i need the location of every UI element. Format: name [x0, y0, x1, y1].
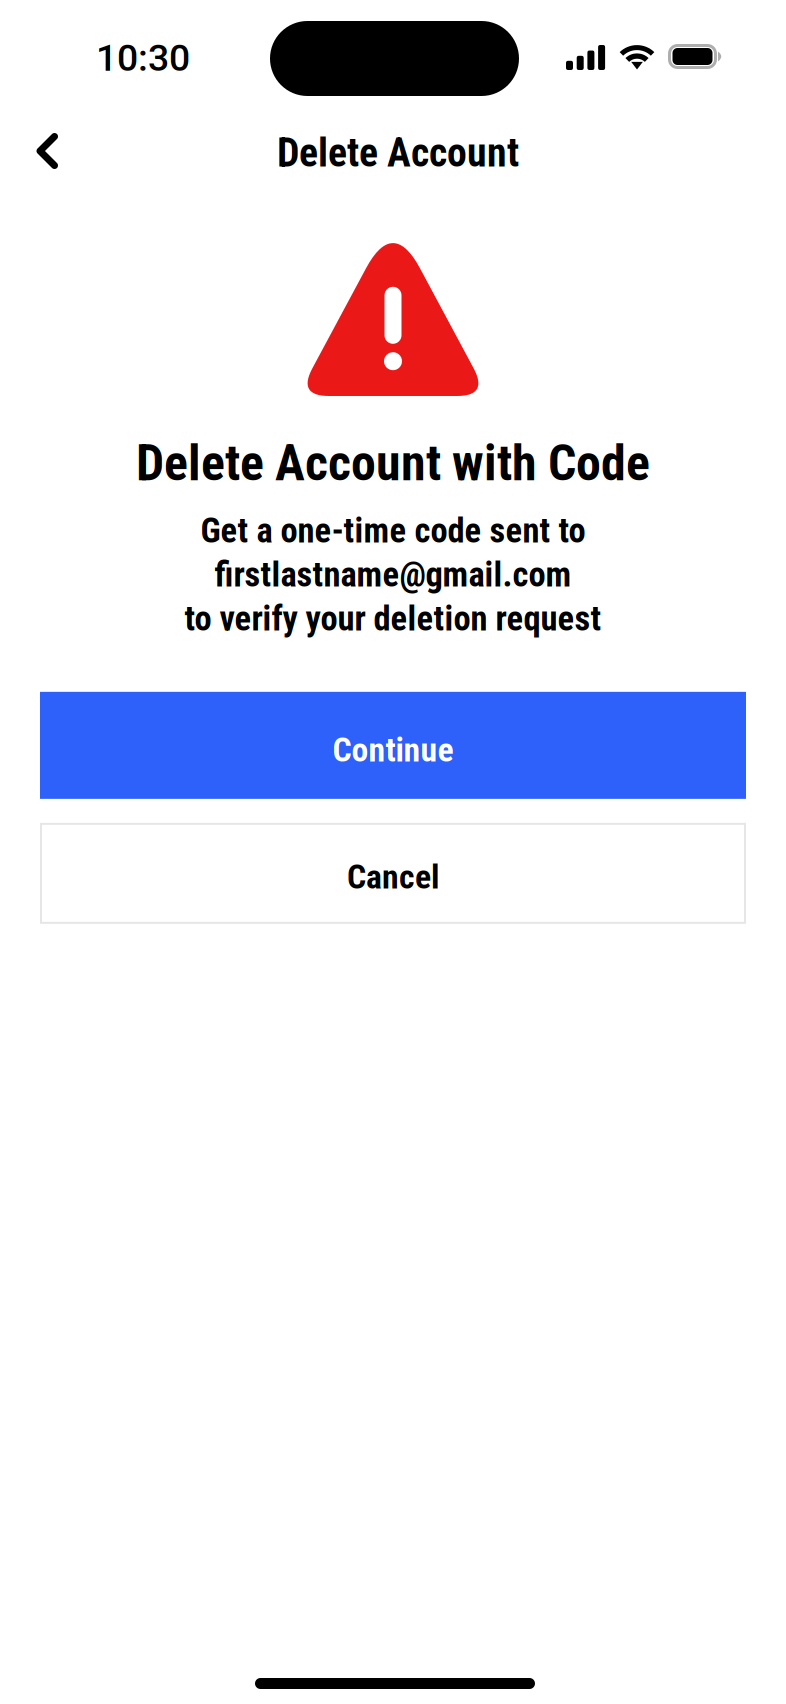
staticText: Delete Account with Code — [136, 434, 650, 492]
button[interactable]: Continue — [40, 692, 746, 799]
staticText: Delete Account — [277, 130, 519, 176]
button[interactable]: Cancel — [40, 823, 746, 924]
button[interactable]: Back — [10, 114, 84, 188]
staticText: firstlastname@gmail.com — [214, 554, 571, 595]
staticText: Get a one-time code sent to — [200, 510, 585, 551]
staticText: Continue — [332, 730, 453, 770]
staticText: 10:30 — [96, 36, 190, 80]
staticText: to verify your deletion request — [184, 598, 601, 639]
staticText: Cancel — [347, 857, 439, 897]
